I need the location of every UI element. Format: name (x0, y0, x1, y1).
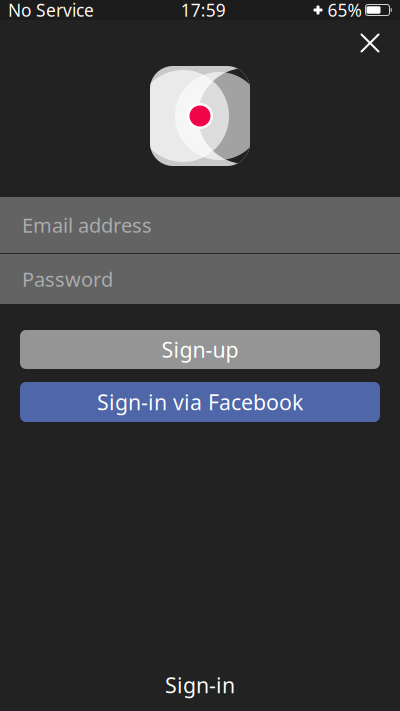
button[interactable]: Close (348, 21, 392, 65)
staticText: 17:59 (181, 0, 226, 21)
staticText: Email address (22, 212, 152, 238)
button[interactable]: Sign-up (20, 330, 380, 369)
button[interactable]: Password (0, 254, 400, 304)
button[interactable]: Sign-in (0, 659, 400, 711)
staticText: No Service (8, 0, 94, 21)
button[interactable]: Email address (0, 197, 400, 253)
staticText: Sign-up (161, 335, 238, 364)
staticText: 65% (327, 0, 361, 21)
staticText: Password (22, 266, 113, 292)
button[interactable]: Sign-in via Facebook (20, 382, 380, 422)
staticText: Sign-in (165, 671, 235, 699)
staticText: Sign-in via Facebook (97, 388, 303, 416)
